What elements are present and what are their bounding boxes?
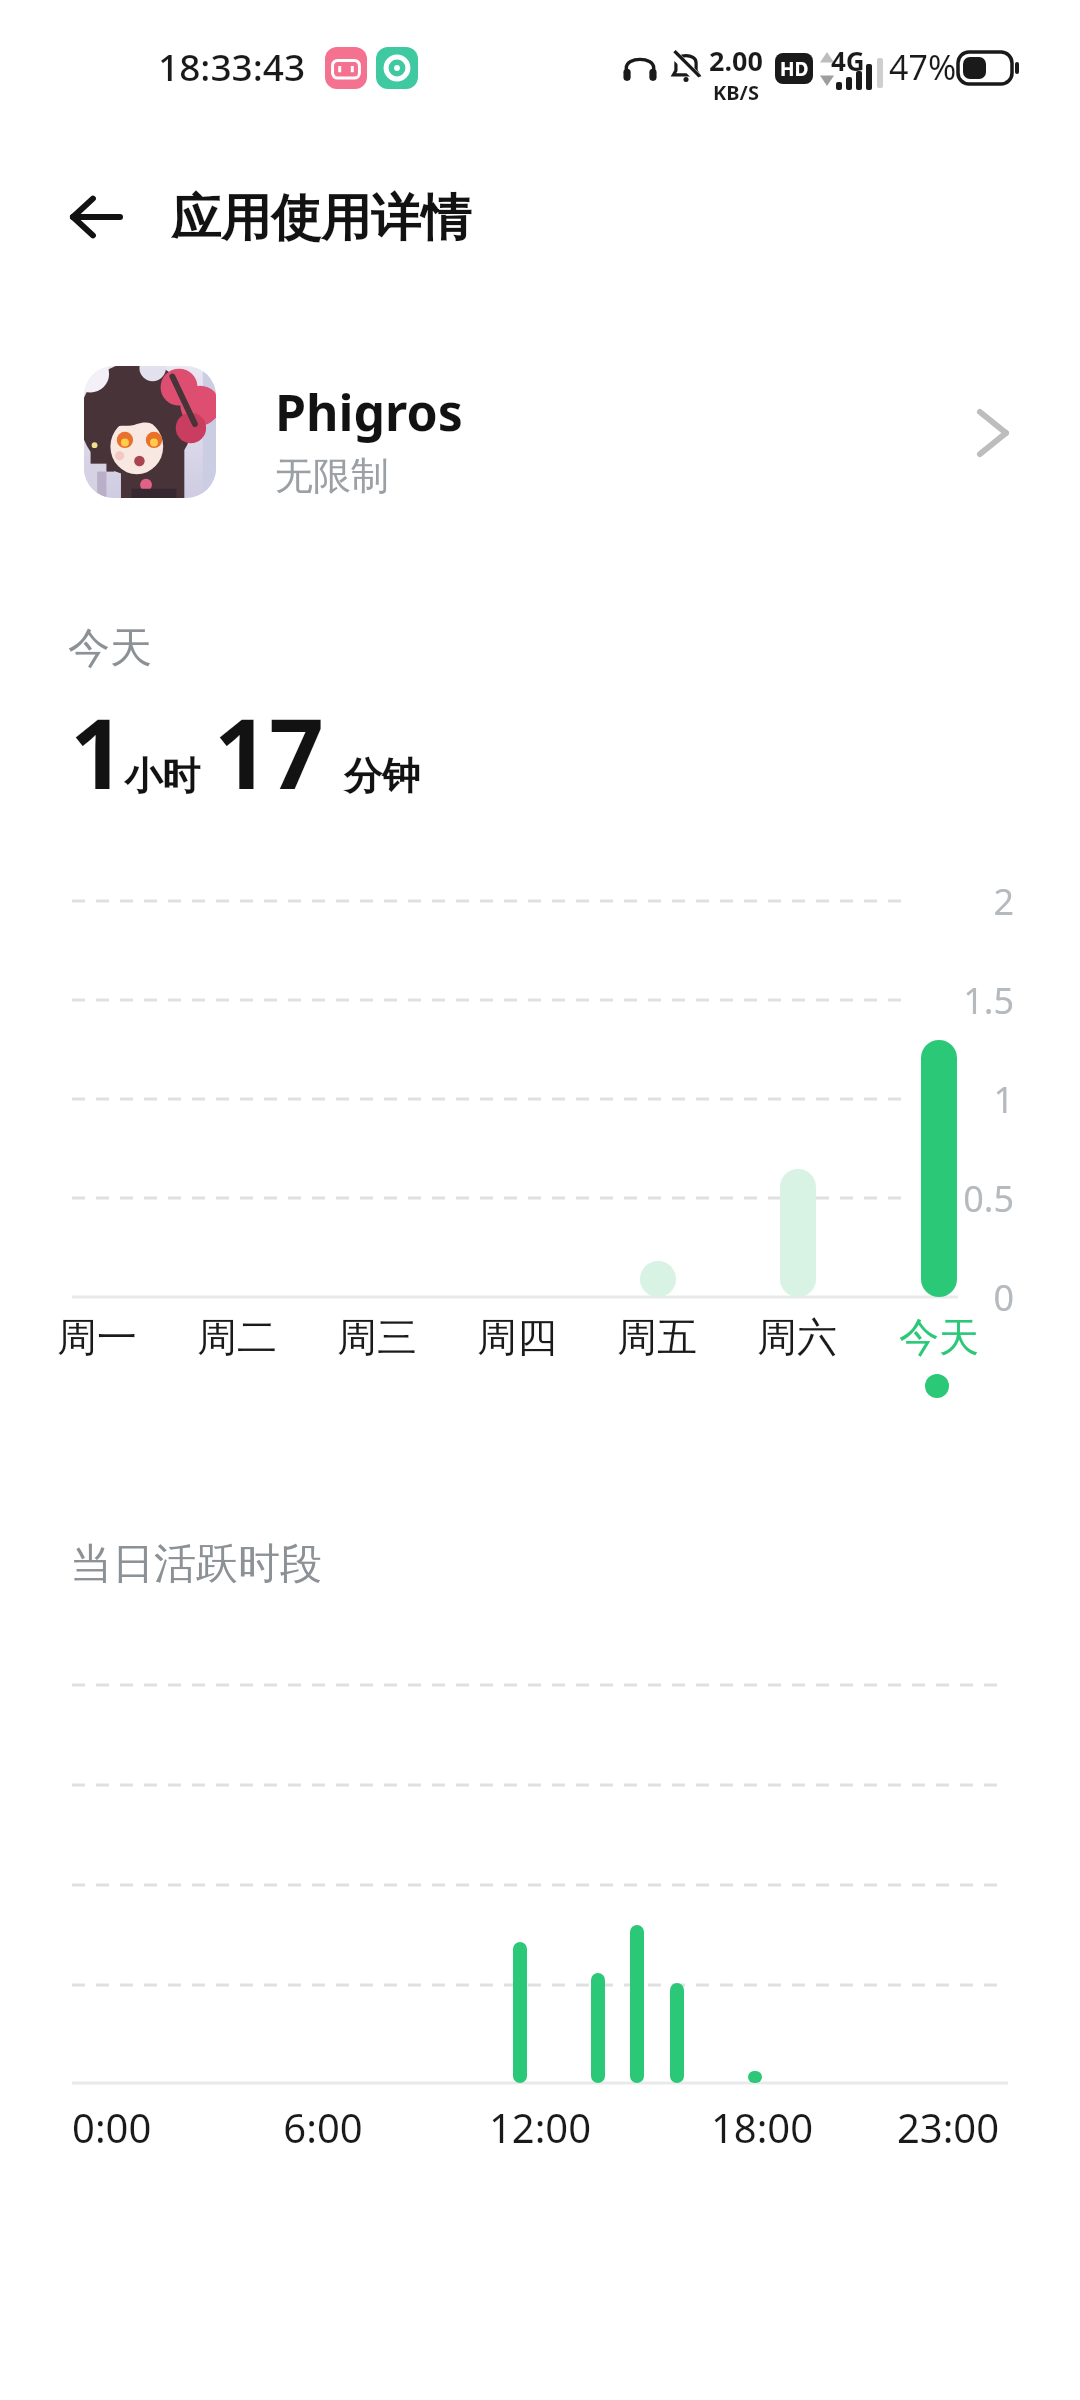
button[interactable]: Phigros bbox=[0, 346, 1080, 518]
staticText: 周二 bbox=[167, 1312, 307, 1362]
staticText: 周四 bbox=[447, 1312, 587, 1362]
staticText: HD bbox=[780, 56, 809, 82]
staticText: 47% bbox=[889, 44, 957, 90]
staticText: 周五 bbox=[587, 1312, 727, 1362]
staticText: 周一 bbox=[27, 1312, 167, 1362]
staticText: 无限制 bbox=[275, 452, 389, 500]
staticText: 周六 bbox=[727, 1312, 867, 1362]
staticText: 4G bbox=[831, 43, 865, 78]
staticText: 17 bbox=[214, 686, 324, 817]
staticText: 18:33:43 bbox=[158, 41, 306, 91]
staticText: 2.00 bbox=[709, 42, 763, 79]
staticText: 1 bbox=[930, 1075, 1014, 1124]
staticText: 0:00 bbox=[72, 2100, 152, 2154]
staticText: 今天 bbox=[68, 622, 152, 675]
staticText: 1 bbox=[70, 686, 125, 817]
staticText: 23:00 bbox=[878, 2100, 1018, 2154]
staticText: 小时 bbox=[124, 752, 200, 800]
staticText: KB/S bbox=[713, 79, 759, 106]
staticText: 2 bbox=[930, 877, 1014, 926]
button[interactable] bbox=[54, 186, 138, 248]
staticText: 分钟 bbox=[344, 752, 420, 800]
staticText: 12:00 bbox=[470, 2100, 610, 2154]
staticText: 0 bbox=[930, 1273, 1014, 1322]
staticText: 0.5 bbox=[930, 1174, 1014, 1223]
staticText: 当日活跃时段 bbox=[70, 1538, 322, 1591]
staticText: 1.5 bbox=[930, 976, 1014, 1025]
staticText: 6:00 bbox=[263, 2100, 383, 2154]
staticText: Phigros bbox=[275, 378, 463, 446]
staticText: 应用使用详情 bbox=[171, 187, 471, 250]
staticText: 今天 bbox=[869, 1312, 1009, 1362]
staticText: 18:00 bbox=[692, 2100, 832, 2154]
staticText: 周三 bbox=[307, 1312, 447, 1362]
